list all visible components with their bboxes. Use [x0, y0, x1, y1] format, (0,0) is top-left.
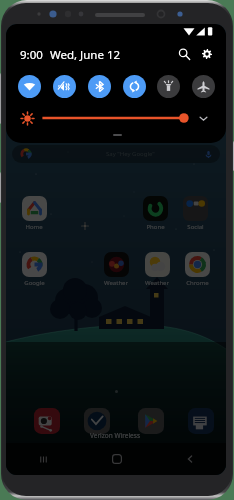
button[interactable]: Airplane mode	[192, 75, 215, 98]
staticText: Say "Hey Google"	[106, 150, 155, 158]
button[interactable]: Social	[182, 196, 208, 231]
button[interactable]: App	[34, 408, 60, 434]
staticText: Social	[187, 223, 204, 231]
button[interactable]: Expand quick settings	[197, 112, 210, 125]
button[interactable]: Bluetooth	[88, 75, 111, 98]
button[interactable]: Sound	[53, 75, 76, 98]
button[interactable]: Wi-Fi	[18, 75, 41, 98]
button[interactable]: Back	[153, 443, 226, 475]
staticText: Weather	[145, 279, 169, 287]
button[interactable]: Auto rotate	[123, 75, 146, 98]
staticText: Verizon Wireless	[90, 431, 141, 440]
button[interactable]: Weather	[144, 252, 170, 287]
staticText: 9:00	[20, 47, 43, 63]
button[interactable]: Google	[21, 252, 47, 287]
button[interactable]: Search	[176, 46, 191, 61]
button[interactable]: Recents	[6, 443, 80, 475]
button[interactable]: Home	[80, 443, 153, 475]
staticText: Wed, June 12	[50, 47, 121, 63]
button[interactable]: App	[138, 408, 164, 434]
button[interactable]: Chrome	[184, 252, 210, 287]
other: Brightness	[21, 112, 34, 125]
staticText: Chrome	[186, 279, 209, 287]
staticText: Google	[24, 279, 45, 287]
button[interactable]: Say "Hey Google"	[12, 145, 220, 163]
button[interactable]: Flashlight	[157, 75, 180, 98]
button[interactable]: App	[188, 408, 214, 434]
staticText: Home	[25, 223, 43, 231]
button[interactable]: Brightness slider	[38, 112, 196, 124]
staticText: Weather	[104, 279, 128, 287]
button[interactable]: App	[84, 408, 110, 434]
button[interactable]: Settings	[199, 46, 214, 61]
button[interactable]: Home	[21, 196, 47, 231]
button[interactable]: Phone	[142, 196, 168, 231]
staticText: Phone	[146, 223, 165, 231]
button[interactable]: Weather	[103, 252, 129, 287]
